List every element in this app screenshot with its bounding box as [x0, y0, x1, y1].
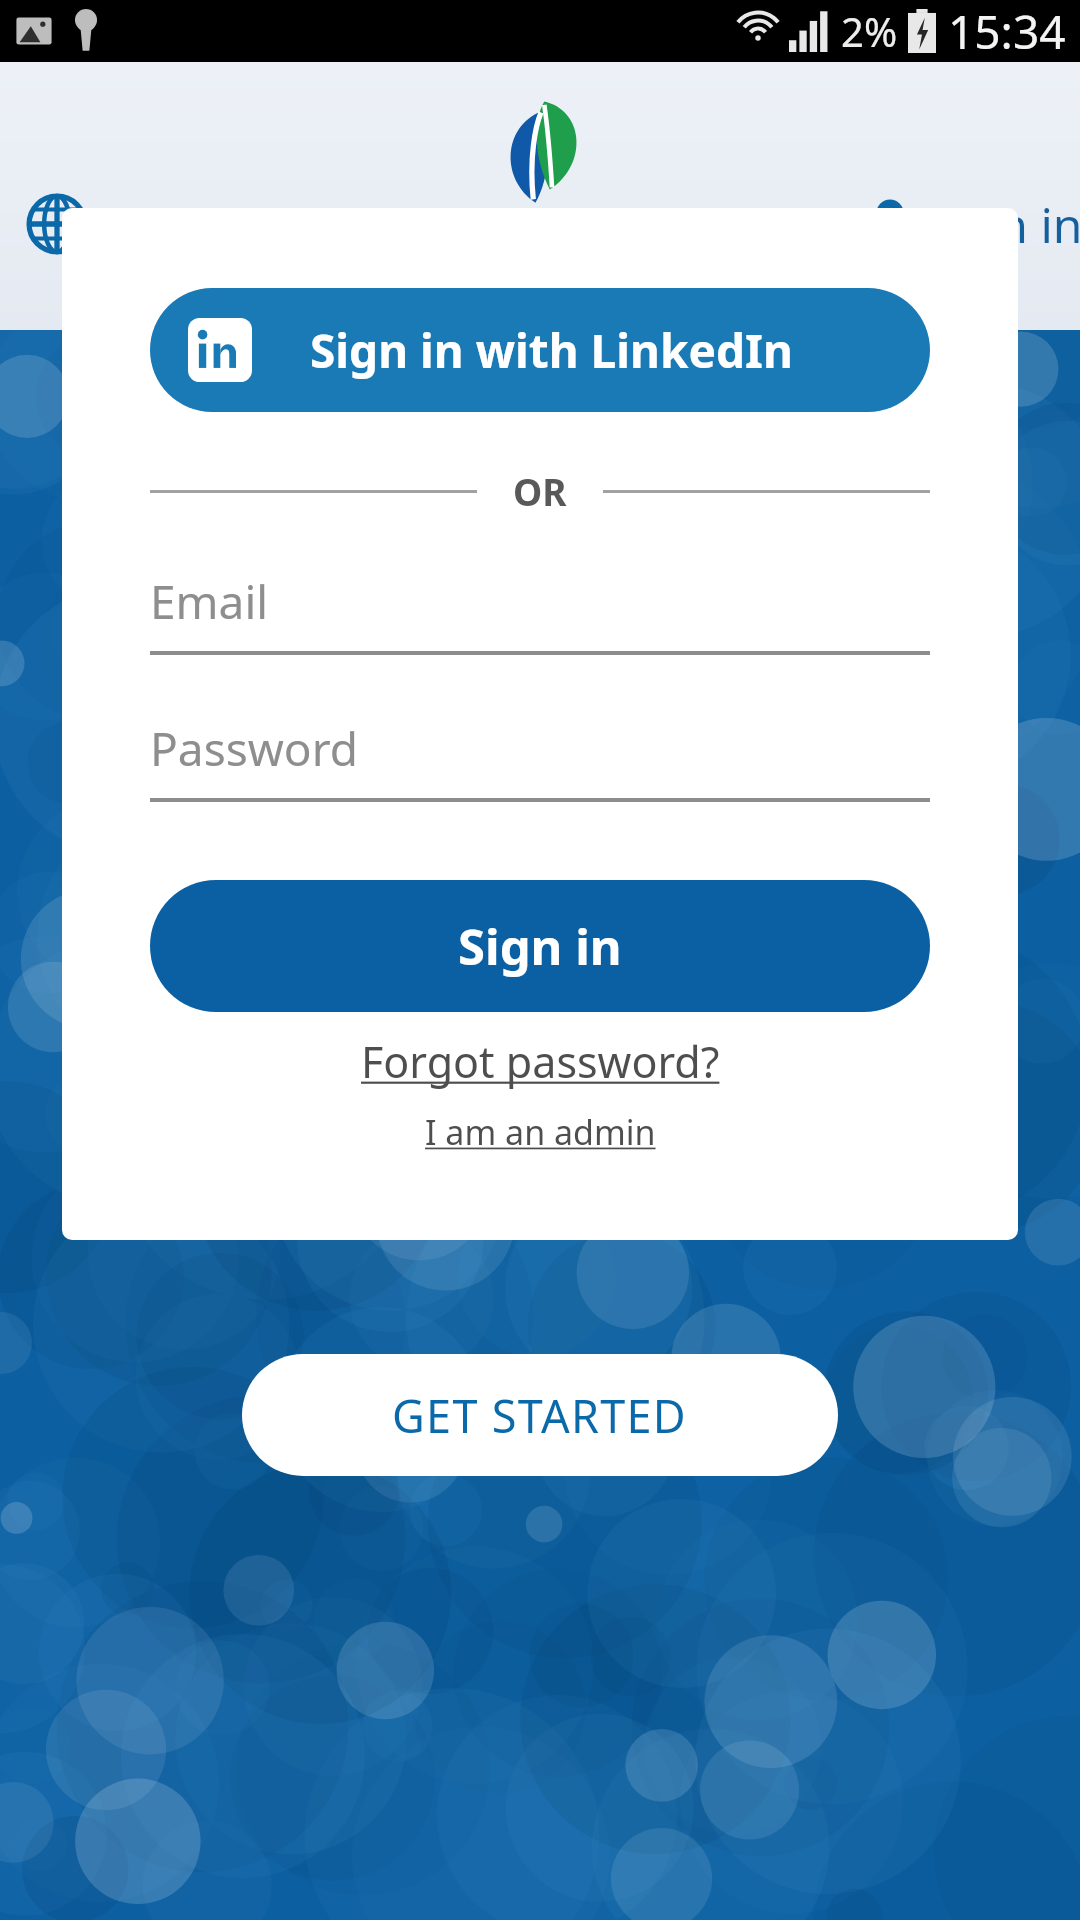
- button[interactable]: Forgot password?: [353, 1024, 728, 1099]
- staticText: 2%: [841, 4, 898, 58]
- button[interactable]: GET STARTED: [242, 1354, 838, 1476]
- staticText: 15:34: [948, 0, 1066, 62]
- button[interactable]: Email: [150, 570, 930, 655]
- button[interactable]: Sign in: [856, 184, 1080, 265]
- staticText: Password: [150, 717, 359, 780]
- staticText: Sign in with LinkedIn: [310, 319, 793, 382]
- staticText: Connect: [297, 928, 783, 1089]
- button[interactable]: Sign in: [150, 880, 930, 1012]
- staticText: Sign in: [930, 192, 1080, 257]
- button[interactable]: Sign in with LinkedIn: [150, 288, 930, 412]
- staticText: Forgot password?: [361, 1032, 720, 1091]
- button[interactable]: I am an admin: [417, 1101, 664, 1163]
- button[interactable]: Password: [150, 717, 930, 802]
- button[interactable]: Change language: [18, 185, 160, 263]
- staticText: I am an admin: [425, 1109, 656, 1155]
- staticText: OR: [513, 466, 567, 516]
- staticText: GET STARTED: [392, 1385, 688, 1446]
- staticText: Sign in: [458, 913, 622, 980]
- staticText: Schulich: [443, 206, 638, 270]
- staticText: Email: [150, 570, 269, 633]
